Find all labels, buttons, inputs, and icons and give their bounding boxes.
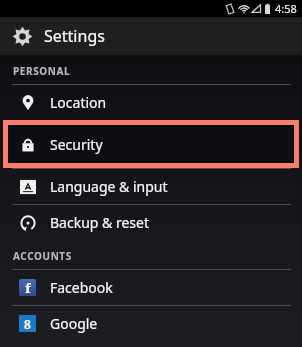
other: Language and input xyxy=(20,179,36,195)
button[interactable]: Backup and reset xyxy=(0,205,302,240)
button[interactable]: Settings xyxy=(0,17,302,55)
other: Location xyxy=(19,94,37,112)
staticText: f xyxy=(25,279,31,296)
button[interactable]: Location xyxy=(0,85,302,120)
button[interactable]: Security xyxy=(3,120,299,168)
staticText: Facebook xyxy=(50,278,113,297)
staticText: Google xyxy=(50,314,98,333)
staticText: Settings xyxy=(44,25,105,47)
staticText: 8 xyxy=(24,316,31,332)
button[interactable]: Google xyxy=(0,306,302,341)
other: Backup and reset xyxy=(19,214,37,232)
staticText: Language & input xyxy=(50,177,168,196)
other: Facebook xyxy=(19,279,36,296)
other: Security xyxy=(19,136,37,154)
button[interactable]: Language and input xyxy=(0,169,302,204)
staticText: PERSONAL xyxy=(13,64,71,78)
button[interactable]: Facebook xyxy=(0,270,302,305)
staticText: Security xyxy=(50,135,103,154)
staticText: Backup & reset xyxy=(50,213,149,232)
staticText: Location xyxy=(50,93,107,112)
staticText: 4:58 xyxy=(275,1,297,16)
staticText: ACCOUNTS xyxy=(13,249,72,263)
other: Google xyxy=(19,315,36,332)
